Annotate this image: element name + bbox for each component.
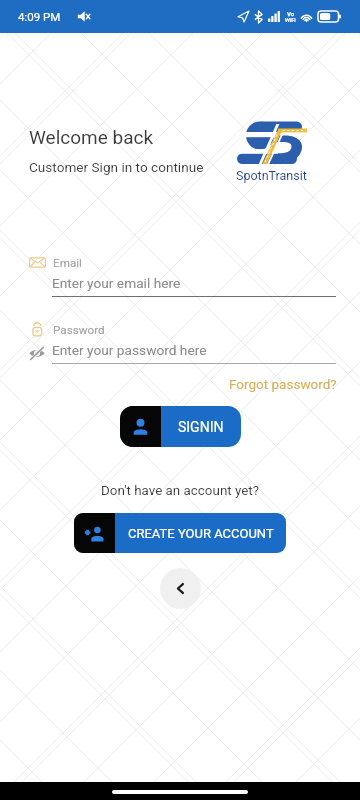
button[interactable]: SIGNIN [120, 406, 241, 447]
button[interactable]: Forgot password? [229, 376, 337, 392]
staticText: Enter your password here [52, 342, 207, 358]
staticText: SIGNIN [178, 419, 224, 435]
button[interactable]: CREATE YOUR ACCOUNT [74, 513, 286, 553]
staticText: Email [53, 256, 82, 270]
staticText: CREATE YOUR ACCOUNT [128, 526, 274, 541]
other: Show password [29, 346, 45, 360]
staticText: Password [53, 323, 105, 337]
staticText: Enter your email here [52, 275, 181, 291]
staticText: Don't have an account yet? [101, 483, 260, 499]
staticText: Welcome back [29, 126, 154, 148]
staticText: 4:09 PM [18, 10, 61, 23]
staticText: Vo [287, 10, 295, 17]
staticText: WiFi [285, 17, 296, 23]
staticText: Customer Sign in to continue [29, 159, 204, 175]
button[interactable]: Back [160, 568, 201, 609]
staticText: SpotnTransit [236, 168, 307, 183]
